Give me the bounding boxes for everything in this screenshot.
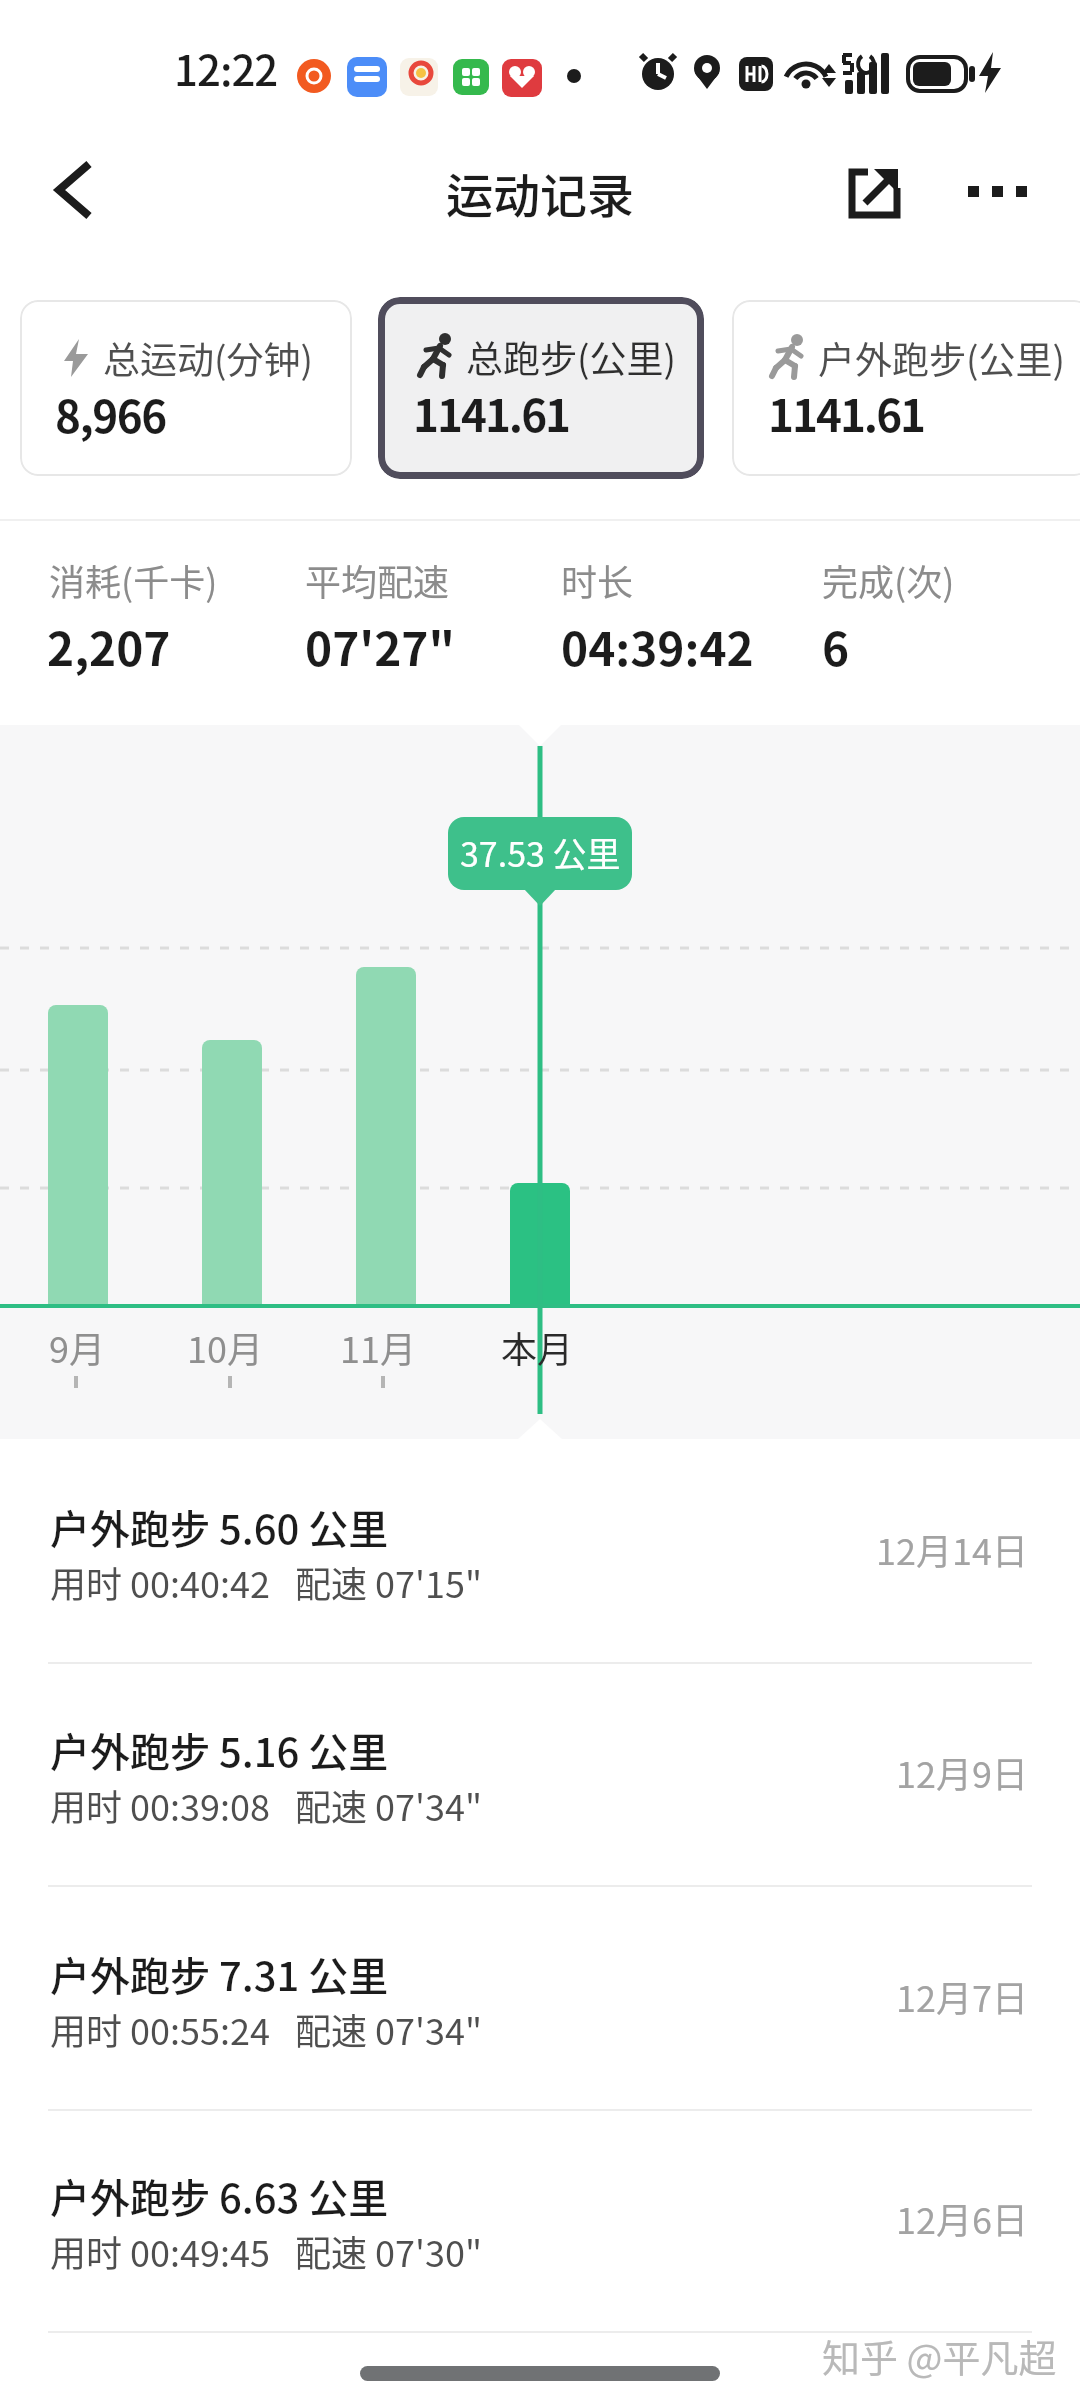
staticText: 配速 07'34" [295,2003,483,2055]
staticText: 12月9日 [896,1746,1028,1798]
staticText: 配速 07'34" [295,1779,483,1831]
staticText: 完成(次) [822,554,955,606]
staticText: 时长 [561,554,634,606]
staticText: 户外跑步 6.63 公里 [50,2167,389,2225]
staticText: 11月 [340,1321,416,1373]
staticText: 消耗(千卡) [49,554,218,606]
staticText: 12月7日 [896,1970,1028,2022]
staticText: 户外跑步 7.31 公里 [50,1945,389,2003]
button[interactable] [378,297,704,479]
staticText: 1141.61 [413,381,570,445]
staticText: 户外跑步 5.60 公里 [50,1498,389,1556]
staticText: 配速 07'15" [295,1556,483,1608]
button[interactable] [40,155,110,225]
staticText: 户外跑步 5.16 公里 [50,1721,389,1779]
staticText: 12月14日 [876,1523,1028,1575]
staticText: 04:39:42 [561,613,754,680]
staticText: 12:22 [174,37,278,98]
staticText: 运动记录 [446,158,634,226]
staticText: 10月 [187,1321,263,1373]
staticText: 平均配速 [305,554,450,606]
staticText: 8,966 [55,382,166,446]
button[interactable] [0,2137,1080,2359]
staticText: 6 [822,613,850,680]
staticText: 37.53 公里 [460,828,621,877]
button[interactable] [0,1468,1080,1690]
button[interactable] [0,1691,1080,1913]
staticText: 总运动(分钟) [103,331,314,385]
staticText: 总跑步(公里) [466,330,677,384]
staticText: 用时 00:39:08 [50,1779,270,1831]
staticText: 12月6日 [896,2192,1028,2244]
staticText: 用时 00:40:42 [50,1556,270,1608]
staticText: 知乎 @平凡超 [822,2328,1057,2383]
button[interactable] [20,300,352,476]
staticText: 用时 00:55:24 [50,2003,270,2055]
staticText: 2,207 [47,613,171,680]
staticText: 户外跑步(公里) [818,331,1066,385]
staticText: 9月 [49,1321,105,1373]
button[interactable] [0,1915,1080,2137]
staticText: 配速 07'30" [295,2225,483,2277]
button[interactable] [732,300,1080,476]
staticText: 用时 00:49:45 [50,2225,270,2277]
staticText: 1141.61 [768,381,925,445]
staticText: 07'27" [305,613,455,680]
button[interactable] [840,158,910,228]
button[interactable] [955,160,1035,220]
staticText: 本月 [501,1321,574,1373]
